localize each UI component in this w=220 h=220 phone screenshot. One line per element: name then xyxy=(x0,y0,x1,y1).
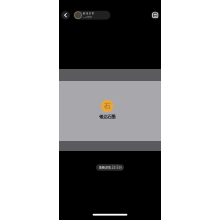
staticText: 老张日常 xyxy=(83,12,95,15)
staticText: 银达石墨 xyxy=(99,114,115,119)
staticText: 石 xyxy=(104,102,111,110)
button[interactable]: Back xyxy=(61,11,70,19)
staticText: 查看详情 23.5万 xyxy=(98,165,121,170)
button[interactable]: 查看详情 23.5万 xyxy=(96,164,124,171)
button[interactable]: Episodes xyxy=(151,11,159,19)
staticText: 2.3万粉丝 xyxy=(83,15,92,19)
button[interactable]: 老张日常 xyxy=(73,11,110,20)
